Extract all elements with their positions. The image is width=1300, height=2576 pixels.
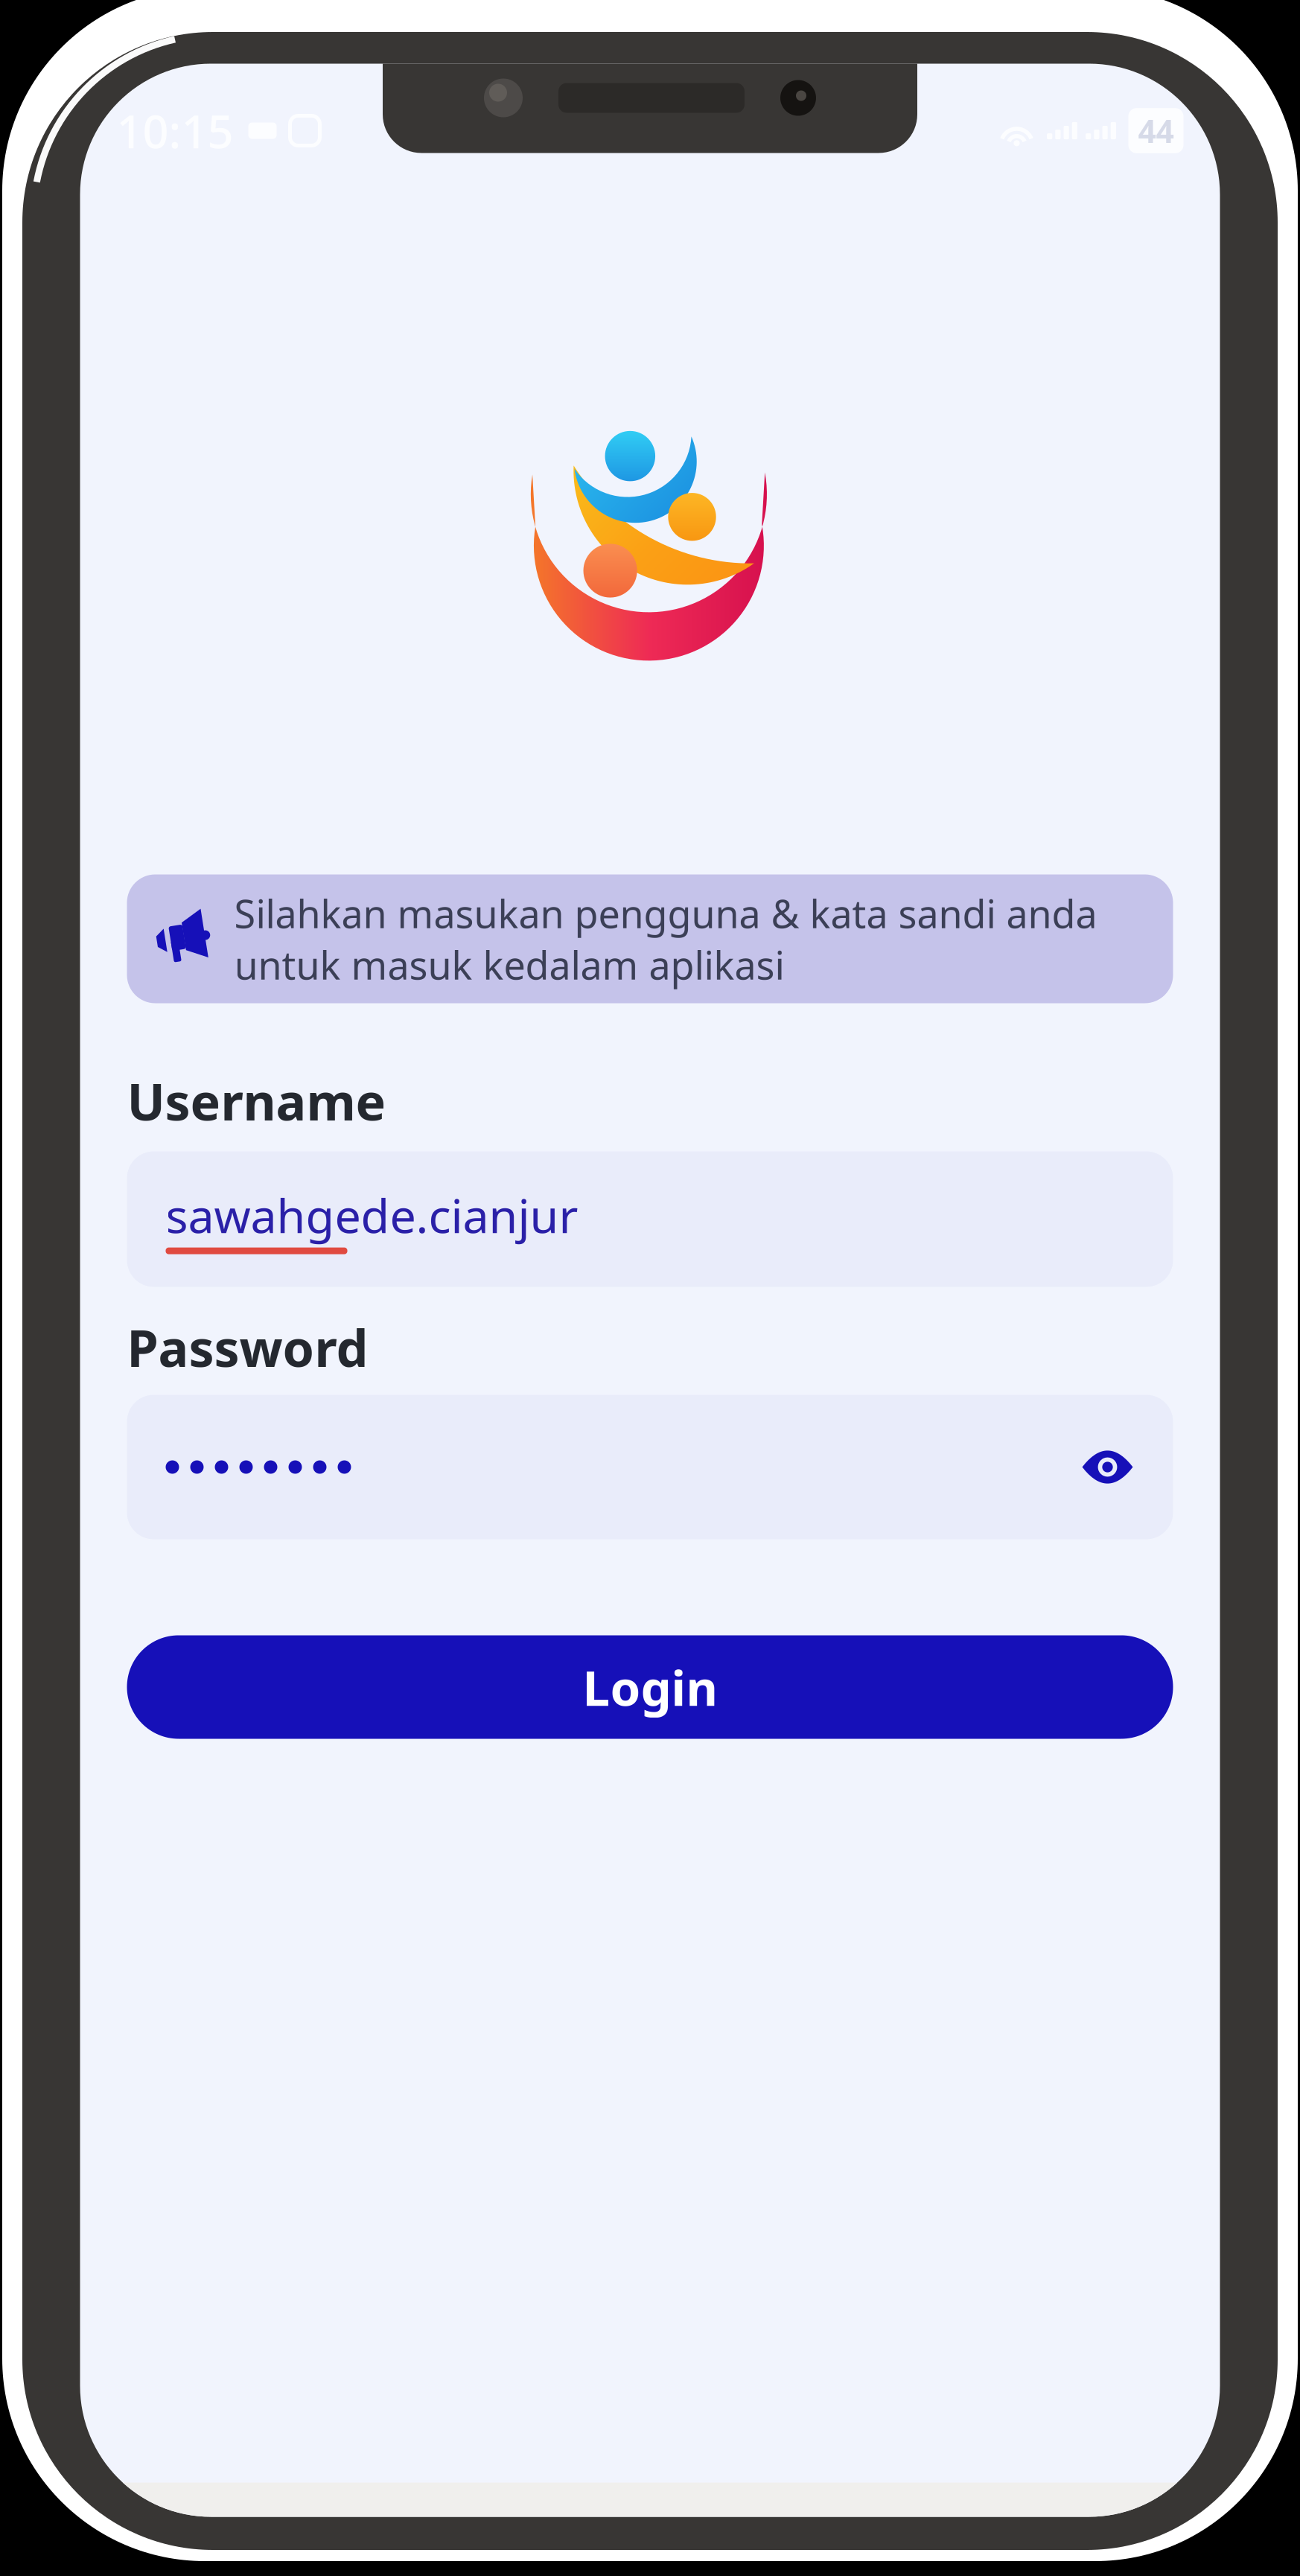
button[interactable]: Show password — [1072, 1441, 1143, 1493]
staticText: 44 — [1138, 110, 1174, 152]
staticText: sawahgede.cianjur — [166, 1184, 578, 1246]
staticText: 10:15 — [117, 100, 233, 161]
staticText: Password — [127, 1314, 368, 1381]
staticText: Login — [583, 1655, 717, 1719]
button[interactable]: Login — [127, 1635, 1173, 1739]
staticText: Silahkan masukan pengguna & kata sandi a… — [234, 887, 1097, 990]
staticText: Username — [127, 1067, 386, 1134]
